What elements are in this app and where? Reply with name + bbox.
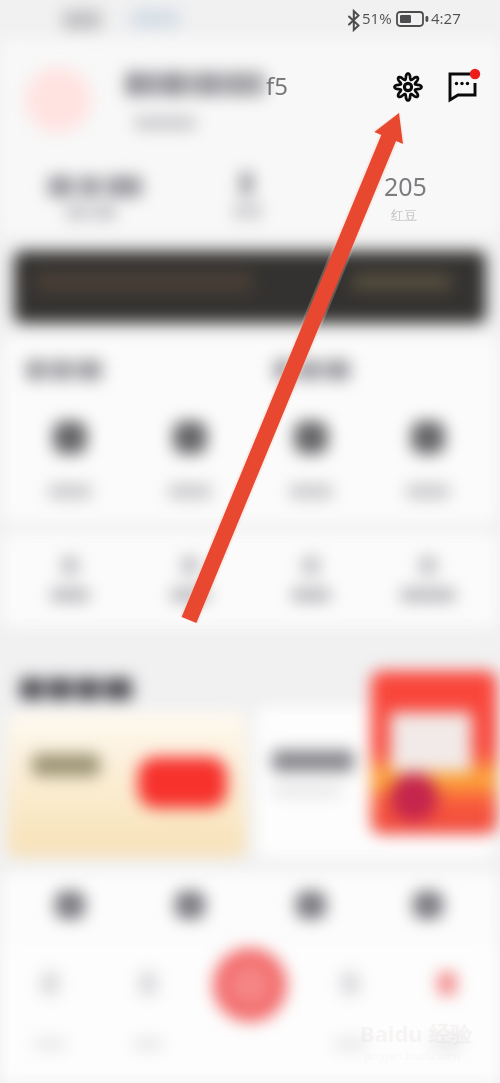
button[interactable]: Messages bbox=[442, 62, 486, 106]
staticText: 红豆 bbox=[391, 207, 417, 223]
staticText: f5 bbox=[266, 69, 288, 102]
staticText: 51% bbox=[362, 8, 392, 28]
staticText: 4:27 bbox=[431, 8, 461, 28]
button[interactable]: Settings bbox=[386, 66, 430, 110]
staticText: Baidu 经验 bbox=[360, 1018, 473, 1048]
staticText: 205 bbox=[384, 169, 427, 203]
